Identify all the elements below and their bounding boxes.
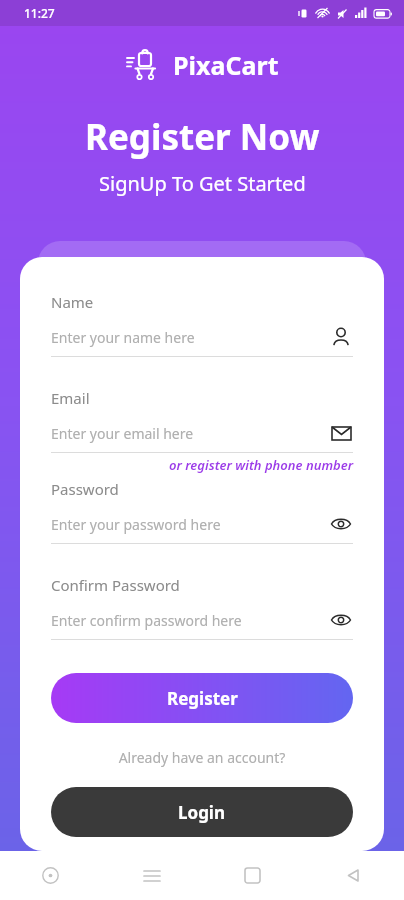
staticText: Confirm Password [51, 575, 180, 595]
button[interactable]: Register [51, 673, 353, 723]
staticText: Email [51, 388, 90, 408]
staticText: PixaCart [173, 48, 279, 82]
button[interactable]: Enter your name here [51, 325, 353, 349]
staticText: Login [178, 801, 226, 824]
staticText: 11:27 [24, 5, 55, 21]
button[interactable]: Recent apps [101, 851, 202, 900]
button[interactable]: or register with phone number [51, 456, 353, 474]
staticText: Enter your name here [51, 328, 329, 347]
staticText: SignUp To Get Started [99, 170, 306, 197]
staticText: Register [167, 687, 238, 710]
button[interactable]: Enter confirm password here [51, 608, 353, 632]
button[interactable]: Login [51, 787, 353, 837]
staticText: Already have an account? [51, 748, 353, 767]
staticText: Enter your password here [51, 515, 329, 534]
staticText: Name [51, 292, 94, 312]
button[interactable]: Back [303, 851, 404, 900]
button[interactable]: Home [202, 851, 303, 900]
staticText: Enter confirm password here [51, 611, 329, 630]
button[interactable]: Assistant [0, 851, 101, 900]
button[interactable]: Enter your email here [51, 421, 353, 445]
staticText: Password [51, 479, 119, 499]
staticText: Enter your email here [51, 424, 329, 443]
button[interactable]: Enter your password here [51, 512, 353, 536]
staticText: Register Now [85, 113, 320, 161]
